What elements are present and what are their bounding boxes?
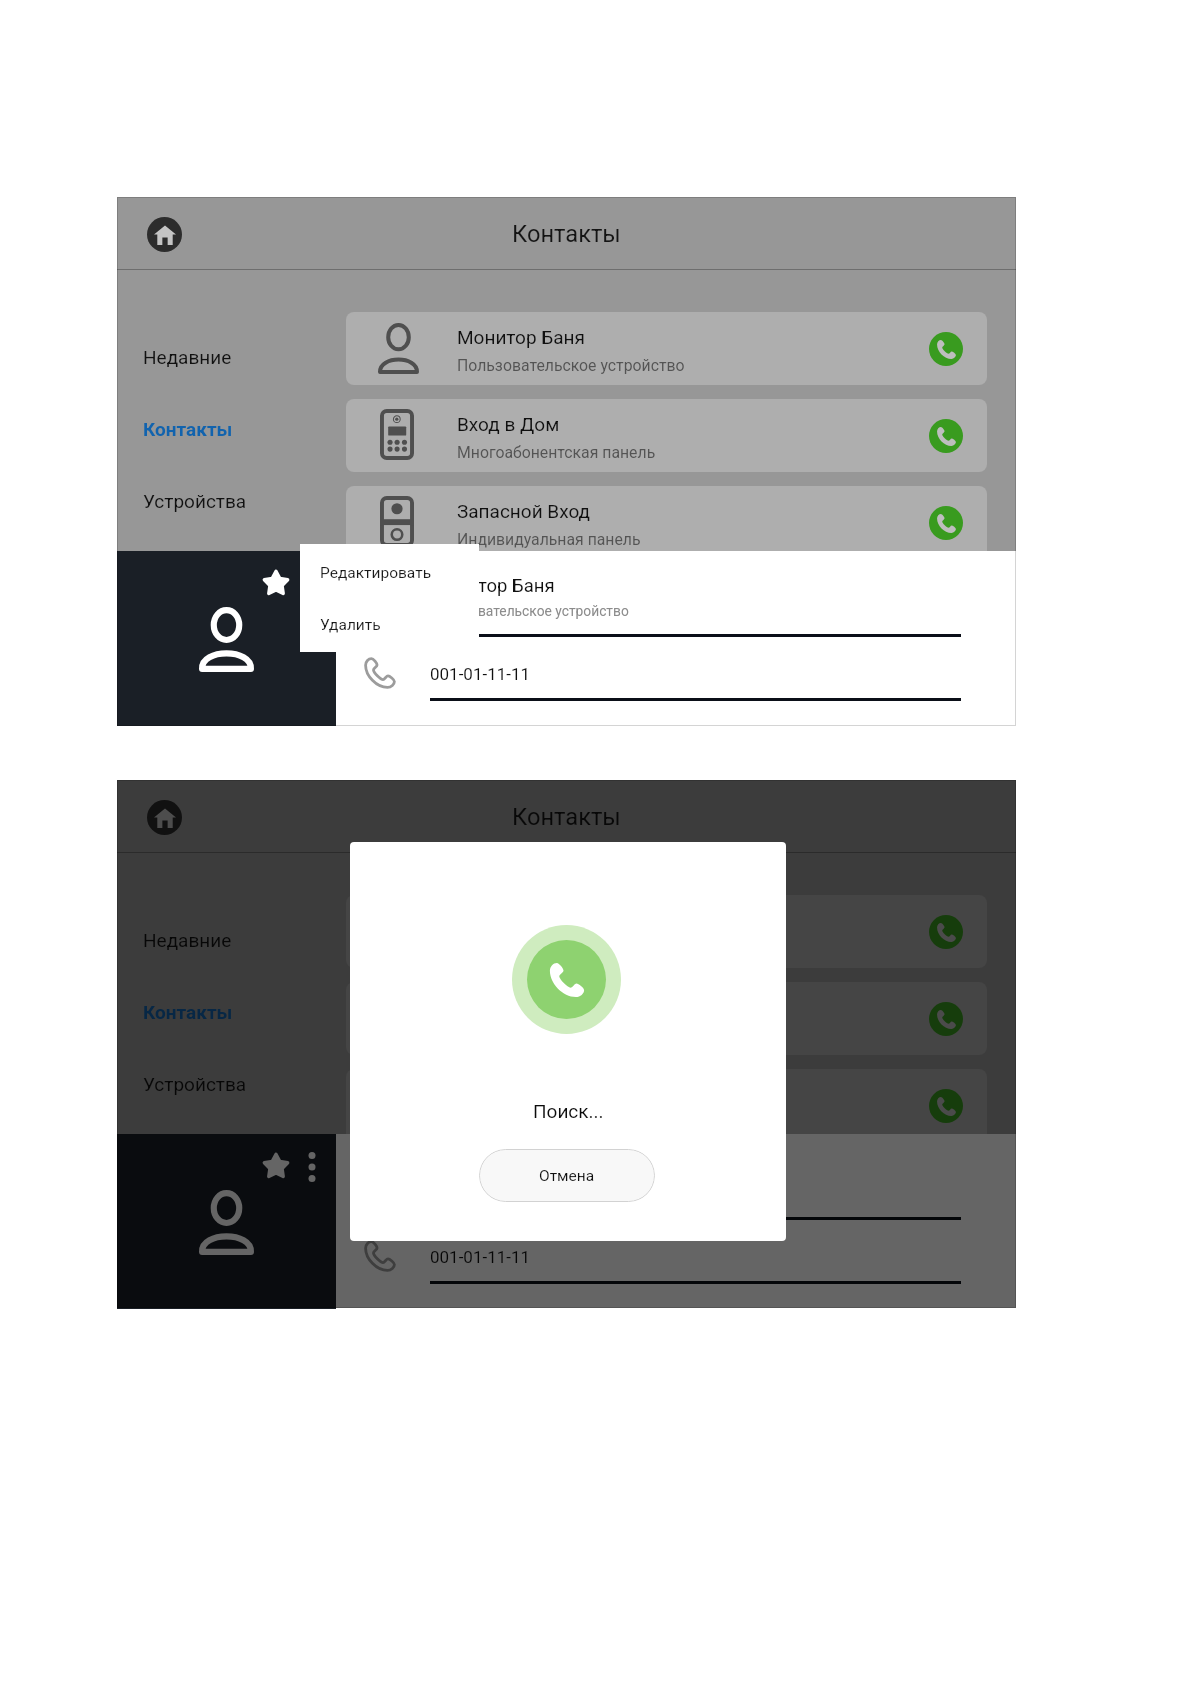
button[interactable]: Favourite	[262, 1152, 290, 1180]
button[interactable]: Контакты	[117, 993, 344, 1031]
staticText: Многоабонентская панель	[457, 443, 656, 462]
staticText: Пользовательское устройство	[457, 939, 685, 958]
button[interactable]: Отмена	[479, 1149, 655, 1202]
staticText: Монитор Баня	[457, 909, 586, 931]
staticText: Вход в Дом	[457, 413, 560, 435]
staticText: Устройства	[143, 1073, 247, 1095]
staticText: Монитор Баня	[430, 1158, 555, 1180]
button[interactable]: Favourite	[262, 569, 290, 597]
button[interactable]: More options	[302, 1148, 322, 1186]
staticText: Пользовательское устройство	[430, 603, 629, 619]
staticText: Пользовательское устройство	[457, 356, 685, 375]
button[interactable]: Call	[929, 1002, 963, 1036]
staticText: Запасной Вход	[457, 500, 591, 522]
staticText: Поиск...	[533, 1100, 604, 1122]
button[interactable]: Вход в Дом	[346, 982, 987, 1055]
staticText: 001-01-11-11	[430, 664, 531, 684]
staticText: Вход в Дом	[457, 996, 560, 1018]
button[interactable]: Монитор Баня	[346, 895, 987, 968]
button[interactable]: Редактировать	[300, 547, 479, 599]
staticText: Монитор Баня	[430, 575, 555, 597]
staticText: Многоабонентская панель	[457, 1026, 656, 1045]
staticText: Контакты	[143, 1001, 233, 1023]
staticText: Недавние	[143, 346, 232, 368]
button[interactable]: Call	[929, 915, 963, 949]
staticText: Отмена	[539, 1167, 595, 1185]
button[interactable]: Удалить	[300, 599, 479, 651]
button[interactable]: Запасной Вход	[346, 1069, 987, 1142]
button[interactable]: Недавние	[117, 921, 344, 959]
staticText: Пользовательское устройство	[430, 1186, 629, 1202]
button[interactable]: Call	[929, 332, 963, 366]
button[interactable]: Устройства	[117, 482, 344, 520]
staticText: Контакты	[512, 803, 621, 831]
button[interactable]: Запасной Вход	[346, 486, 987, 559]
staticText: Редактировать	[320, 564, 432, 582]
button[interactable]: Контакты	[117, 410, 344, 448]
staticText: Устройства	[143, 490, 247, 512]
button[interactable]: Call	[929, 1089, 963, 1123]
staticText: Удалить	[320, 616, 381, 634]
staticText: Контакты	[512, 220, 621, 248]
button[interactable]: Недавние	[117, 338, 344, 376]
button[interactable]: Call	[929, 419, 963, 453]
button[interactable]: More options	[302, 565, 322, 603]
button[interactable]: Home	[147, 217, 182, 252]
button[interactable]: Call	[929, 506, 963, 540]
button[interactable]: Home	[147, 800, 182, 835]
staticText: Контакты	[143, 418, 233, 440]
button[interactable]: Вход в Дом	[346, 399, 987, 472]
button[interactable]: Монитор Баня	[346, 312, 987, 385]
staticText: Индивидуальная панель	[457, 530, 641, 549]
staticText: Монитор Баня	[457, 326, 586, 348]
staticText: Недавние	[143, 929, 232, 951]
staticText: Индивидуальная панель	[457, 1113, 641, 1132]
staticText: 001-01-11-11	[430, 1247, 531, 1267]
button[interactable]: Устройства	[117, 1065, 344, 1103]
